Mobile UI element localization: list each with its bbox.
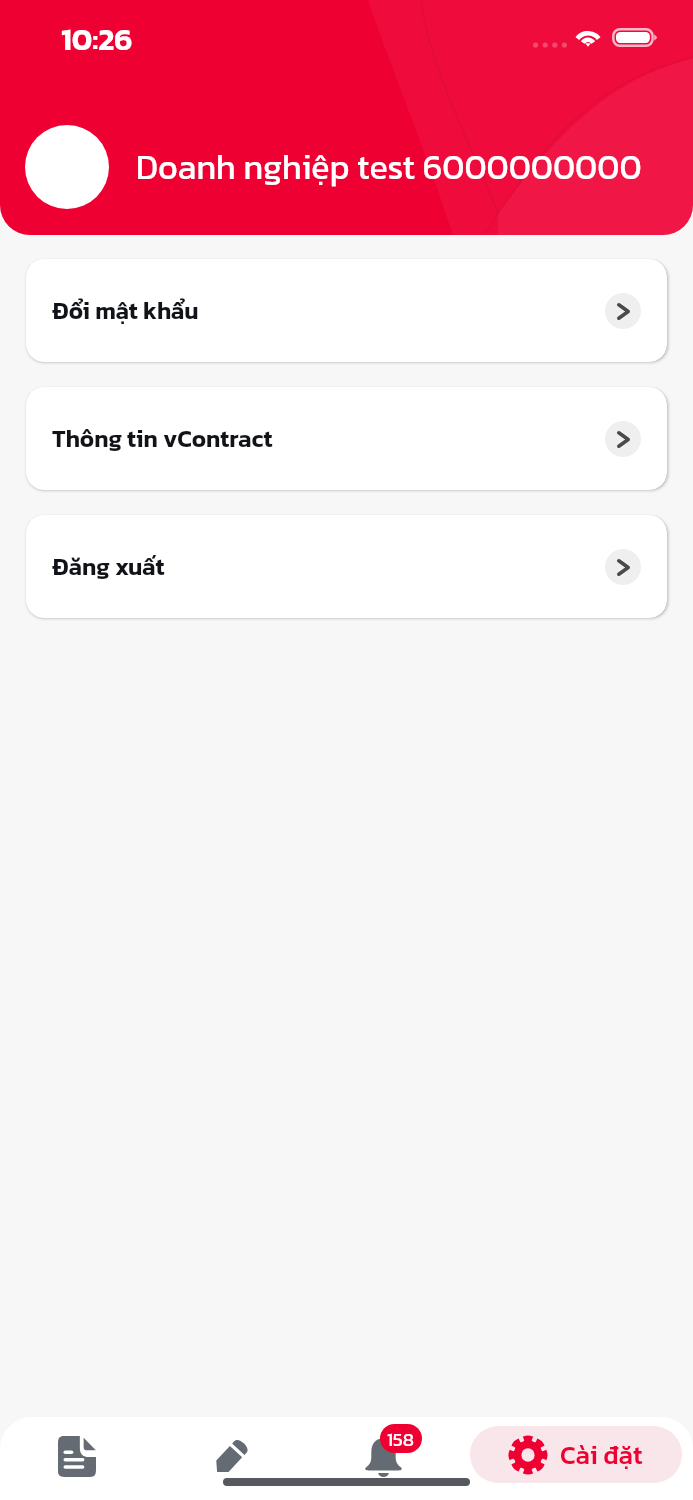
staticText: Thông tin vContract	[52, 421, 273, 457]
button[interactable]: Cài đặt	[470, 1426, 682, 1483]
staticText: 158	[387, 1425, 415, 1453]
button[interactable]: Thông tin vContract	[26, 387, 667, 490]
staticText: 10:26	[61, 16, 133, 62]
button[interactable]: Ký	[188, 1417, 274, 1500]
staticText: Doanh nghiệp test 6000000000	[136, 142, 642, 193]
staticText: Đăng xuất	[52, 549, 165, 585]
staticText: Cài đặt	[560, 1435, 643, 1474]
button[interactable]: Đăng xuất	[26, 515, 667, 618]
staticText: Đổi mật khẩu	[52, 293, 199, 329]
button[interactable]: Thông báo	[340, 1417, 426, 1500]
button[interactable]: Đổi mật khẩu	[26, 259, 667, 362]
button[interactable]: Tài liệu	[34, 1417, 120, 1500]
